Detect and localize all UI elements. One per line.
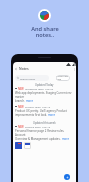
- staticText: Overview & Management updates.: [15, 137, 62, 141]
- button[interactable]: Create New Note: [56, 75, 70, 81]
- staticText: Product UX pretty. Ux/E agency Product: [15, 109, 67, 113]
- staticText: Personal finance page 2 Review rules. Ac…: [15, 129, 75, 137]
- button[interactable]: Attachment: [15, 142, 22, 149]
- staticText: Search notes: [20, 77, 36, 80]
- staticText: And share notes..: [31, 25, 59, 39]
- staticText: NEW: [18, 87, 24, 90]
- staticText: Create New Note: [56, 75, 70, 81]
- staticText: more: [48, 113, 55, 117]
- button[interactable]: Attachment: [24, 142, 31, 149]
- staticText: Web app deployments. Staging Current rev…: [15, 91, 75, 99]
- button[interactable]: More options: [72, 67, 76, 71]
- staticText: Updated this week: [33, 121, 56, 125]
- button[interactable]: NEW: [15, 125, 75, 141]
- staticText: Nov 16: [42, 125, 51, 128]
- button[interactable]: Back: [14, 67, 18, 71]
- staticText: more: [62, 137, 69, 141]
- staticText: Nov 19: [42, 105, 51, 108]
- staticText: NEW: [18, 125, 24, 128]
- button[interactable]: Search notes: [15, 75, 49, 81]
- staticText: Finance team: [25, 125, 41, 128]
- button[interactable]: NEW: [15, 105, 75, 117]
- staticText: Notes: [19, 66, 29, 71]
- button[interactable]: NEW: [15, 87, 75, 103]
- staticText: Nov 20: [45, 87, 54, 90]
- staticText: Product team: [25, 105, 41, 108]
- staticText: Marketing team: [25, 87, 44, 90]
- button[interactable]: Create note: [64, 174, 70, 180]
- staticText: NEW: [18, 105, 24, 108]
- staticText: branch.: [15, 99, 26, 103]
- staticText: Updated Today: [35, 83, 54, 87]
- staticText: improvements first look.: [15, 113, 48, 117]
- staticText: more: [26, 99, 33, 103]
